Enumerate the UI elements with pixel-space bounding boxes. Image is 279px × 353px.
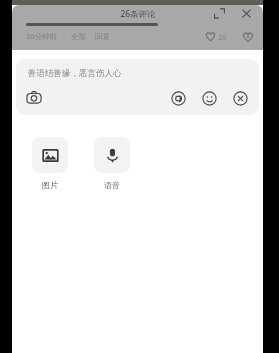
staticText: 语音 [104,180,120,190]
button[interactable]: Close [237,5,255,22]
button[interactable]: Progress [26,23,158,26]
button[interactable]: 善语结善缘，恶言伤人心 [16,59,259,115]
staticText: 图片 [42,180,58,190]
staticText: · [63,31,66,41]
button[interactable]: Emoji [200,89,218,107]
button[interactable]: Camera [25,89,43,107]
button[interactable]: Record voice [92,135,132,192]
button[interactable]: Favorite [241,30,255,44]
staticText: 30分钟前 [26,31,58,41]
staticText: 26条评论 [120,8,156,20]
button[interactable]: Add photo [30,135,70,192]
staticText: 善语结善缘，恶言伤人心 [28,68,122,79]
button[interactable]: Mention [169,89,187,107]
staticText: 20 [218,32,227,42]
staticText: 全部 [71,32,86,41]
button[interactable]: Expand [210,5,228,22]
staticText: 回复 [95,32,110,41]
button[interactable]: Clear [231,89,249,107]
button[interactable]: 20 [203,29,229,44]
